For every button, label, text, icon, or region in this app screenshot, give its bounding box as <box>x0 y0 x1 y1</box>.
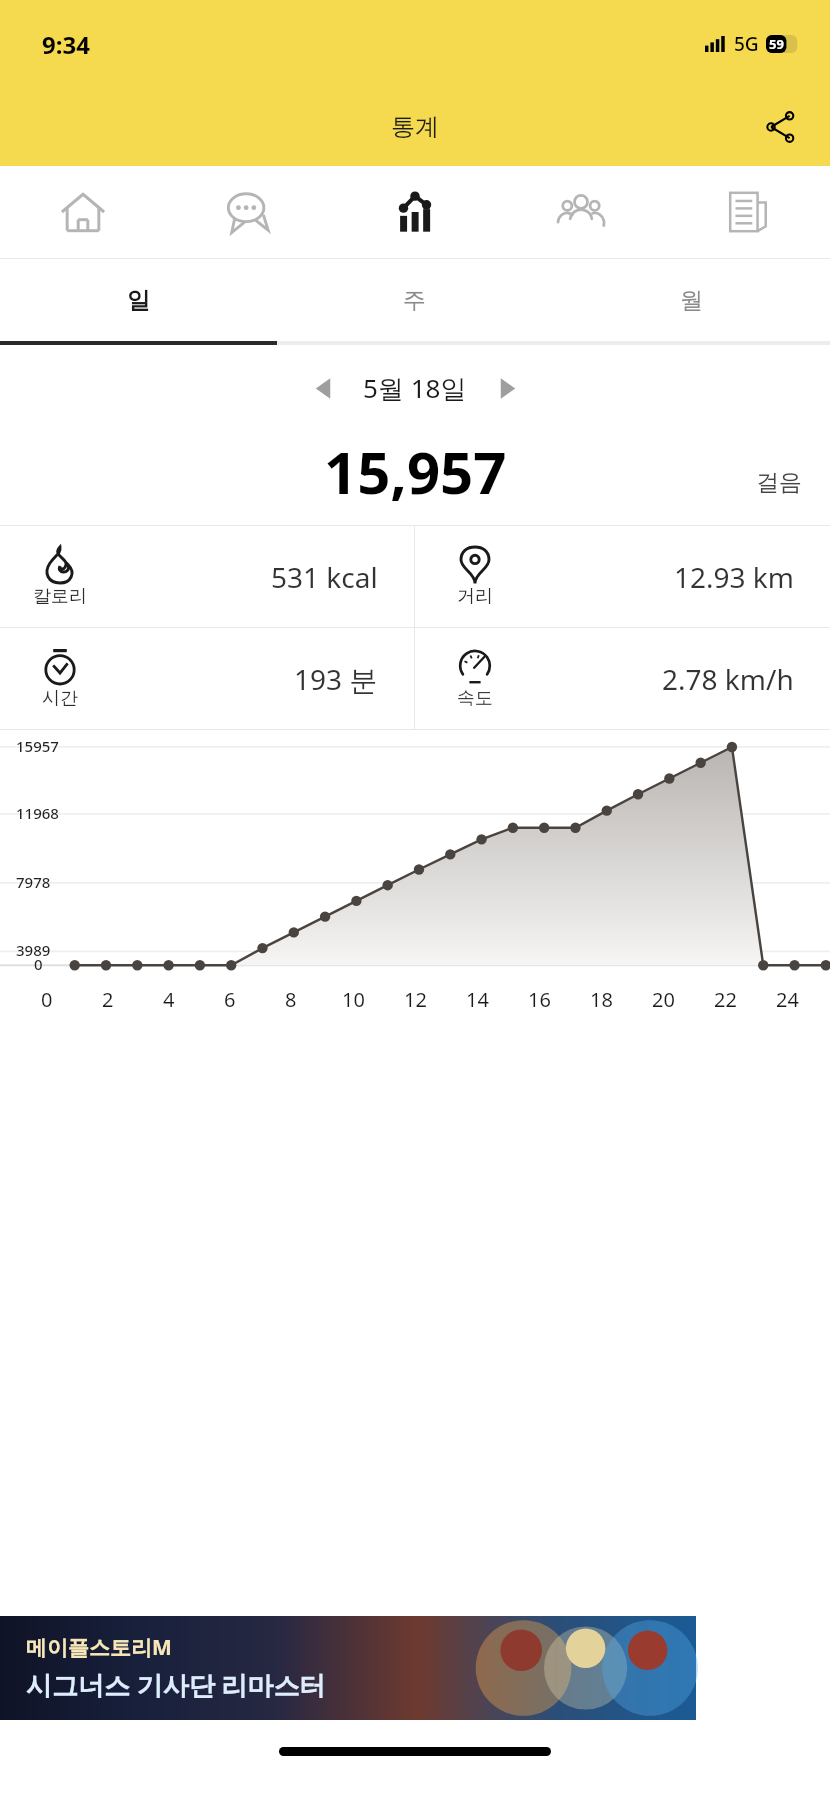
staticText: 16 <box>528 986 551 1013</box>
staticText: 12 <box>404 986 427 1013</box>
staticText: 통계 <box>391 112 439 142</box>
staticText: 4 <box>163 986 175 1013</box>
staticText: 531 kcal <box>271 558 378 596</box>
button[interactable]: 칼로리 <box>0 526 414 627</box>
button[interactable]: 메이플스토리M <box>0 1616 696 1720</box>
staticText: 11968 <box>16 803 59 823</box>
staticText: 2 <box>102 986 114 1013</box>
button[interactable]: Previous day <box>297 361 351 415</box>
button[interactable]: Next day <box>479 361 533 415</box>
button[interactable]: Home <box>0 166 166 258</box>
staticText: 주 <box>403 286 426 315</box>
button[interactable]: 거리 <box>415 526 830 627</box>
staticText: 14 <box>466 986 489 1013</box>
button[interactable]: 일 <box>0 259 276 341</box>
staticText: 59 <box>769 35 784 53</box>
button[interactable]: Chats <box>166 166 332 258</box>
staticText: 칼로리 <box>33 585 87 608</box>
staticText: 0 <box>34 954 43 974</box>
staticText: 5월 18일 <box>363 370 467 406</box>
button[interactable]: 월 <box>553 259 830 341</box>
staticText: 9:34 <box>42 28 90 61</box>
staticText: 6 <box>224 986 236 1013</box>
staticText: 시간 <box>42 687 78 710</box>
button[interactable]: Friends <box>498 166 664 258</box>
staticText: 거리 <box>457 585 493 608</box>
staticText: 10 <box>342 986 365 1013</box>
staticText: 속도 <box>457 687 493 710</box>
staticText: 시그너스 기사단 리마스터 <box>26 1667 326 1703</box>
staticText: 22 <box>714 986 737 1013</box>
button[interactable]: Share <box>752 99 808 155</box>
button[interactable]: 속도 <box>415 628 830 729</box>
button[interactable]: 주 <box>276 259 553 341</box>
staticText: 2.78 km/h <box>662 660 794 698</box>
staticText: 12.93 km <box>674 558 794 596</box>
button[interactable]: More <box>664 166 830 258</box>
staticText: 3989 <box>16 940 51 960</box>
button[interactable]: Statistics <box>332 166 498 258</box>
staticText: 월 <box>680 286 703 315</box>
staticText: 걸음 <box>756 468 802 497</box>
staticText: 15,957 <box>324 432 507 511</box>
button[interactable]: 시간 <box>0 628 414 729</box>
staticText: 15957 <box>16 736 59 756</box>
staticText: 193 분 <box>294 660 378 698</box>
staticText: 5G <box>734 31 759 57</box>
staticText: 0 <box>41 986 53 1013</box>
staticText: 20 <box>652 986 675 1013</box>
staticText: 일 <box>127 286 150 315</box>
staticText: 메이플스토리M <box>26 1633 172 1662</box>
staticText: 24 <box>776 986 799 1013</box>
staticText: 7978 <box>16 872 51 892</box>
staticText: 8 <box>285 986 297 1013</box>
staticText: 18 <box>590 986 613 1013</box>
